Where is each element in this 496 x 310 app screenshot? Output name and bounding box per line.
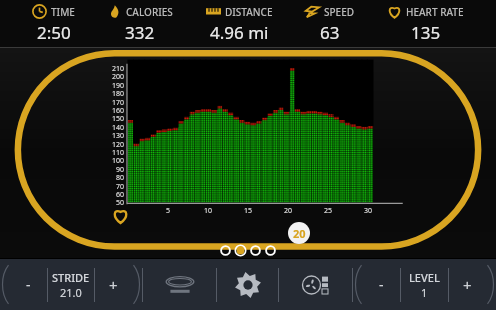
staticText: 20 (293, 226, 306, 241)
button[interactable]: - (10, 259, 47, 310)
staticText: 332 (125, 21, 155, 44)
staticText: SPEED (324, 5, 355, 19)
staticText: 80 (102, 173, 124, 183)
button[interactable]: STRIDE (48, 259, 94, 310)
staticText: 135 (411, 21, 441, 44)
staticText: 4.96 mi (210, 21, 269, 44)
staticText: + (109, 275, 118, 295)
staticText: 200 (102, 72, 124, 82)
staticText: 60 (102, 190, 124, 200)
staticText: 90 (102, 165, 124, 175)
staticText: 1 (421, 285, 428, 300)
button[interactable]: 20 (288, 222, 310, 244)
staticText: 160 (102, 106, 124, 116)
staticText: HEART RATE (406, 5, 464, 19)
staticText: - (26, 275, 31, 294)
button[interactable]: - (363, 259, 400, 310)
staticText: 2:50 (37, 21, 71, 44)
button[interactable]: Fan (279, 259, 352, 310)
staticText: 190 (102, 81, 124, 91)
staticText: 140 (102, 123, 124, 133)
staticText: DISTANCE (225, 5, 273, 19)
button[interactable]: Smart Stride (143, 259, 216, 310)
staticText: 100 (102, 156, 124, 166)
button[interactable]: TIME (32, 4, 75, 44)
staticText: 50 (102, 198, 124, 208)
staticText: 110 (102, 148, 124, 158)
button[interactable]: DISTANCE (206, 4, 273, 44)
staticText: 130 (102, 131, 124, 141)
staticText: STRIDE (52, 270, 90, 285)
staticText: 120 (102, 140, 124, 150)
button[interactable]: Settings (217, 259, 278, 310)
staticText: 63 (320, 21, 340, 44)
staticText: - (379, 275, 384, 294)
button[interactable]: + (449, 259, 486, 310)
staticText: 20 (282, 206, 294, 216)
staticText: 180 (102, 89, 124, 99)
staticText: 70 (102, 182, 124, 192)
staticText: 21.0 (60, 285, 82, 300)
button[interactable]: HEART RATE (387, 4, 464, 44)
button[interactable]: CALORIES (107, 4, 173, 44)
staticText: 25 (322, 206, 334, 216)
staticText: + (463, 275, 472, 295)
button[interactable]: SPEED (305, 4, 355, 44)
staticText: 5 (162, 206, 174, 216)
button[interactable]: LEVEL (401, 259, 448, 310)
staticText: 170 (102, 98, 124, 108)
staticText: 15 (242, 206, 254, 216)
staticText: LEVEL (409, 270, 440, 285)
staticText: TIME (51, 5, 75, 19)
staticText: 30 (362, 206, 374, 216)
staticText: 210 (102, 64, 124, 74)
button[interactable]: + (95, 259, 132, 310)
staticText: CALORIES (126, 5, 173, 19)
staticText: 150 (102, 114, 124, 124)
staticText: 10 (202, 206, 214, 216)
